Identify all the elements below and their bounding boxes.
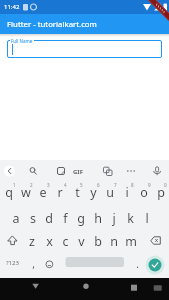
staticText: g: [77, 210, 85, 226]
button[interactable]: n: [106, 233, 122, 249]
button[interactable]: b: [90, 233, 106, 249]
staticText: y: [90, 184, 97, 200]
button[interactable]: [78, 279, 94, 294]
button[interactable]: g: [73, 210, 89, 226]
staticText: 11:42: [4, 3, 20, 11]
button[interactable]: [7, 40, 162, 58]
button[interactable]: m: [123, 233, 139, 249]
button[interactable]: ,: [25, 256, 41, 272]
staticText: .: [136, 257, 139, 271]
staticText: v: [78, 233, 85, 249]
button[interactable]: y: [85, 184, 101, 200]
staticText: Flutter - tutorialkart.com: [7, 19, 97, 30]
button[interactable]: c: [57, 233, 73, 249]
staticText: 6: [97, 182, 100, 188]
staticText: GIF: [73, 168, 83, 176]
staticText: f: [63, 210, 68, 226]
staticText: w: [21, 184, 31, 200]
button[interactable]: f: [57, 210, 73, 226]
staticText: 8: [131, 182, 134, 188]
button[interactable]: [4, 233, 22, 248]
staticText: r: [57, 184, 63, 200]
button[interactable]: e: [35, 184, 51, 200]
button[interactable]: p: [153, 184, 169, 200]
button[interactable]: t: [69, 184, 85, 200]
staticText: q: [5, 184, 13, 200]
button[interactable]: a: [8, 210, 24, 226]
button[interactable]: x: [41, 233, 57, 249]
button[interactable]: [101, 163, 115, 178]
button[interactable]: .: [129, 256, 145, 272]
staticText: e: [39, 184, 47, 200]
staticText: 4: [64, 182, 67, 188]
staticText: 7: [114, 182, 117, 188]
staticText: s: [30, 210, 36, 226]
staticText: o: [140, 184, 148, 200]
staticText: ,: [32, 257, 35, 271]
button[interactable]: h: [90, 210, 106, 226]
staticText: b: [94, 233, 102, 249]
staticText: n: [110, 233, 118, 249]
button[interactable]: [126, 279, 142, 294]
staticText: 5: [80, 182, 83, 188]
button[interactable]: k: [122, 210, 138, 226]
staticText: x: [46, 233, 53, 249]
button[interactable]: s: [25, 210, 41, 226]
button[interactable]: [42, 257, 57, 272]
button[interactable]: ?123: [4, 258, 21, 267]
staticText: 0: [164, 182, 167, 188]
button[interactable]: w: [18, 184, 34, 200]
button[interactable]: l: [139, 210, 155, 226]
staticText: d: [45, 210, 53, 226]
button[interactable]: i: [119, 184, 135, 200]
button[interactable]: [28, 279, 44, 294]
button[interactable]: [150, 279, 166, 294]
staticText: i: [125, 184, 129, 200]
staticText: z: [29, 233, 35, 249]
staticText: a: [12, 210, 20, 226]
staticText: j: [112, 210, 116, 226]
staticText: 2: [30, 182, 33, 188]
button[interactable]: [3, 163, 17, 178]
button[interactable]: j: [106, 210, 122, 226]
button[interactable]: [124, 163, 138, 178]
staticText: k: [127, 210, 134, 226]
button[interactable]: u: [102, 184, 118, 200]
button[interactable]: [146, 256, 165, 275]
staticText: u: [106, 184, 114, 200]
button[interactable]: q: [1, 184, 17, 200]
staticText: p: [157, 184, 165, 200]
button[interactable]: [147, 233, 165, 248]
staticText: m: [125, 233, 137, 249]
staticText: 3: [47, 182, 50, 188]
button[interactable]: r: [52, 184, 68, 200]
staticText: ?123: [6, 259, 19, 267]
staticText: h: [94, 210, 102, 226]
button[interactable]: [72, 163, 86, 178]
staticText: t: [75, 184, 80, 200]
staticText: 9: [148, 182, 151, 188]
button[interactable]: d: [41, 210, 57, 226]
staticText: l: [145, 210, 149, 226]
staticText: 1: [13, 182, 16, 188]
button[interactable]: [66, 257, 125, 267]
staticText: Full Name: [11, 38, 33, 44]
button[interactable]: [150, 163, 164, 178]
button[interactable]: [54, 163, 68, 178]
button[interactable]: v: [73, 233, 89, 249]
button[interactable]: z: [24, 233, 40, 249]
button[interactable]: o: [136, 184, 152, 200]
staticText: c: [62, 233, 69, 249]
button[interactable]: [26, 163, 40, 178]
